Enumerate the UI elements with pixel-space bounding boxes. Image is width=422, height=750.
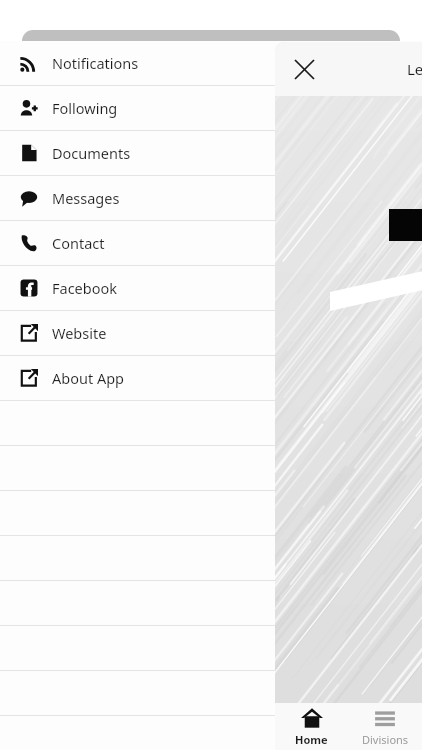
staticText: Following (52, 98, 118, 118)
button[interactable]: Facebook (0, 266, 422, 310)
staticText: Divisions (362, 732, 409, 747)
staticText: Messages (52, 188, 120, 208)
button[interactable]: Divisions (348, 703, 422, 750)
button[interactable]: Contact (0, 221, 422, 265)
staticText: Documents (52, 143, 131, 163)
button[interactable]: About App (0, 356, 422, 400)
staticText: Leadership (407, 59, 422, 79)
button[interactable] (0, 581, 422, 625)
staticText: Notifications (52, 53, 139, 73)
staticText: Contact (52, 233, 105, 253)
button[interactable]: Documents (0, 131, 422, 175)
button[interactable]: Home (275, 703, 348, 750)
button[interactable] (0, 536, 422, 580)
button[interactable] (0, 446, 422, 490)
staticText: Home (295, 732, 328, 747)
button[interactable]: Website (0, 311, 422, 355)
button[interactable]: Messages (0, 176, 422, 220)
button[interactable] (0, 626, 422, 670)
button[interactable] (0, 491, 422, 535)
button[interactable] (0, 401, 422, 445)
button[interactable] (0, 716, 422, 750)
staticText: Facebook (52, 278, 118, 298)
button[interactable]: Close (288, 53, 320, 85)
staticText: About App (52, 368, 125, 388)
button[interactable] (0, 671, 422, 715)
button[interactable]: Notifications (0, 41, 422, 85)
staticText: Website (52, 323, 107, 343)
button[interactable]: Following (0, 86, 422, 130)
